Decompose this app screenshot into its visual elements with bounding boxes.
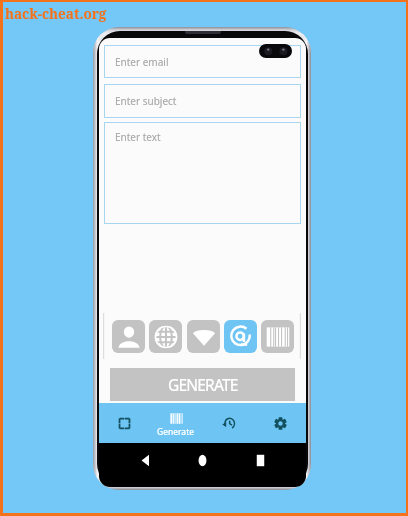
button[interactable]: Settings xyxy=(254,403,306,443)
staticText: hack-cheat.org xyxy=(5,5,107,23)
button[interactable]: Recents xyxy=(246,446,274,474)
staticText: Enter subject xyxy=(115,94,177,108)
button[interactable]: History xyxy=(202,403,254,443)
button[interactable]: Enter subject xyxy=(104,84,301,118)
button[interactable]: Email code xyxy=(224,320,257,353)
staticText: Enter text xyxy=(115,130,161,144)
button[interactable]: Home xyxy=(188,446,216,474)
button[interactable]: Back xyxy=(131,446,159,474)
staticText: Enter email xyxy=(115,55,169,69)
button[interactable]: Barcode xyxy=(261,320,294,353)
staticText: Generate xyxy=(157,426,195,438)
button[interactable]: Contact info code xyxy=(112,320,145,353)
button[interactable]: Generate xyxy=(150,403,202,443)
button[interactable]: Enter text xyxy=(104,122,301,224)
staticText: GENERATE xyxy=(168,374,238,395)
button[interactable]: Website code xyxy=(149,320,182,353)
button[interactable]: Enter email xyxy=(104,45,301,78)
button[interactable]: Wifi code xyxy=(187,320,220,353)
button[interactable]: GENERATE xyxy=(110,368,295,401)
button[interactable]: Scan xyxy=(99,403,150,443)
